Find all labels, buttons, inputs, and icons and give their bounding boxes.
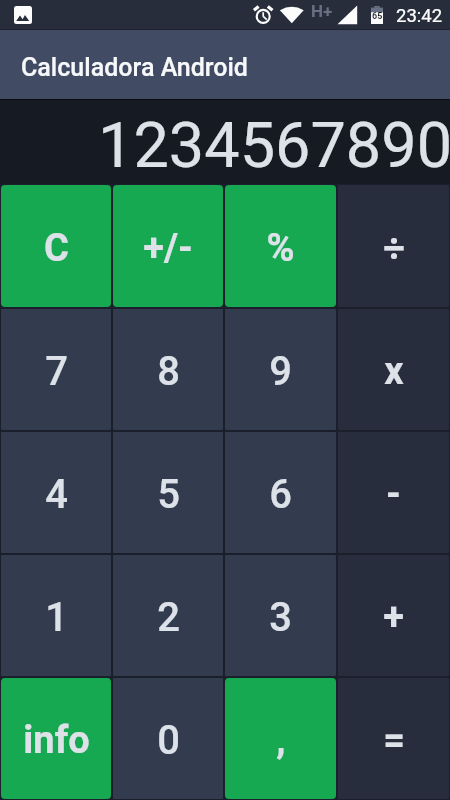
button[interactable]: 2 xyxy=(113,555,223,676)
button[interactable]: = xyxy=(338,678,449,799)
button[interactable]: 5 xyxy=(113,432,223,553)
button[interactable]: + xyxy=(338,555,449,676)
staticText: ÷ xyxy=(383,226,405,271)
staticText: 2 xyxy=(157,594,180,641)
button[interactable]: 7 xyxy=(1,309,111,430)
button[interactable]: 6 xyxy=(225,432,336,553)
staticText: H+ xyxy=(311,1,333,21)
staticText: 5 xyxy=(157,471,180,518)
button[interactable]: 9 xyxy=(225,309,336,430)
staticText: 65 xyxy=(372,11,383,22)
button[interactable]: % xyxy=(225,185,336,307)
staticText: 4 xyxy=(45,471,68,518)
staticText: 1 xyxy=(45,594,68,641)
button[interactable]: +/- xyxy=(113,185,223,307)
staticText: 6 xyxy=(269,471,292,518)
staticText: x xyxy=(384,349,404,394)
staticText: +/- xyxy=(143,226,193,271)
staticText: info xyxy=(23,718,90,763)
staticText: 23:42 xyxy=(396,5,443,27)
staticText: 9 xyxy=(269,348,292,395)
staticText: 0 xyxy=(157,717,180,764)
button[interactable]: x xyxy=(338,309,449,430)
staticText: , xyxy=(276,718,286,763)
staticText: C xyxy=(44,226,69,271)
staticText: 8 xyxy=(157,348,180,395)
staticText: = xyxy=(383,718,405,763)
staticText: Calculadora Android xyxy=(21,53,248,82)
staticText: 7 xyxy=(45,348,68,395)
button[interactable]: ÷ xyxy=(338,185,449,307)
button[interactable]: 0 xyxy=(113,678,223,799)
staticText: 3 xyxy=(269,594,292,641)
staticText: % xyxy=(266,226,295,271)
staticText: - xyxy=(386,472,401,517)
button[interactable]: - xyxy=(338,432,449,553)
button[interactable]: 1 xyxy=(1,555,111,676)
button[interactable]: 4 xyxy=(1,432,111,553)
button[interactable]: 3 xyxy=(225,555,336,676)
staticText: + xyxy=(383,595,404,640)
button[interactable]: , xyxy=(225,678,336,799)
button[interactable]: 8 xyxy=(113,309,223,430)
staticText: 1234567890 xyxy=(98,109,450,183)
button[interactable]: info xyxy=(1,678,111,799)
button[interactable]: C xyxy=(1,185,111,307)
